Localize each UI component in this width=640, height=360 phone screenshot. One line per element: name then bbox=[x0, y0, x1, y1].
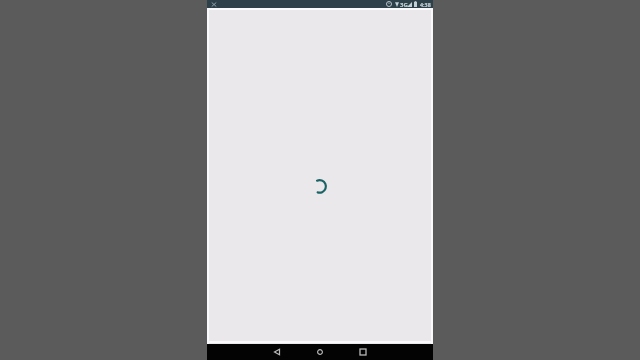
button[interactable]: Back bbox=[267, 344, 287, 360]
button[interactable]: Home bbox=[310, 344, 330, 360]
button[interactable]: Recent apps bbox=[353, 344, 373, 360]
staticText: 3G bbox=[400, 1, 408, 9]
other: Notification bbox=[211, 2, 217, 7]
staticText: 4:38 bbox=[420, 1, 431, 8]
